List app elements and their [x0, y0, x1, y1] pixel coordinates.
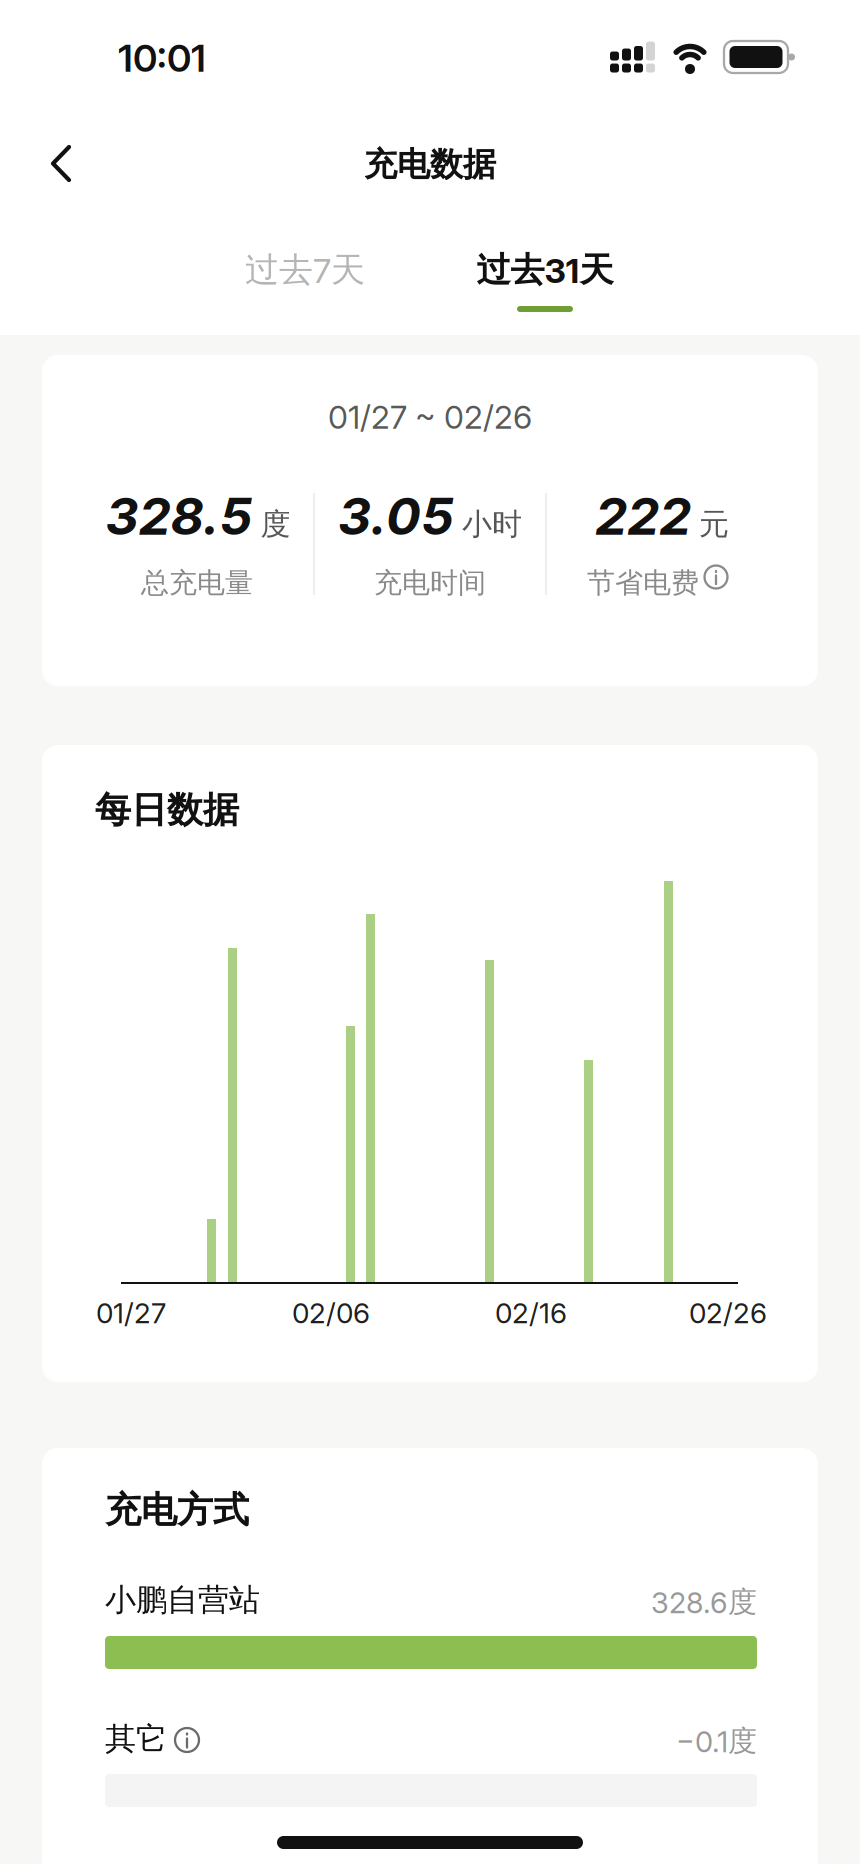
- staticText: 节省电费: [587, 565, 699, 601]
- staticText: 充电数据: [364, 144, 496, 185]
- staticText: 02/16: [495, 1296, 567, 1330]
- staticText: 每日数据: [95, 787, 239, 833]
- staticText: 其它: [105, 1719, 167, 1759]
- staticText: 过去31天: [476, 249, 613, 291]
- staticText: 总充电量: [141, 565, 253, 601]
- staticText: 3.05: [338, 485, 454, 547]
- staticText: 328.6度: [651, 1584, 757, 1620]
- staticText: 元: [699, 505, 729, 543]
- staticText: 充电时间: [374, 565, 486, 601]
- staticText: 222: [595, 485, 691, 547]
- button[interactable]: 过去31天: [435, 230, 655, 310]
- staticText: 02/26: [689, 1296, 767, 1330]
- staticText: 小时: [462, 505, 522, 543]
- staticText: 01/27: [96, 1296, 166, 1330]
- staticText: 10:01: [118, 35, 206, 81]
- button[interactable]: About saved cost: [695, 556, 736, 597]
- staticText: 过去7天: [245, 249, 365, 291]
- staticText: 充电方式: [105, 1487, 249, 1533]
- button[interactable]: Back: [31, 125, 91, 202]
- staticText: 小鹏自营站: [105, 1580, 260, 1620]
- staticText: 01/27 ~ 02/26: [328, 398, 532, 436]
- staticText: 度: [260, 505, 290, 543]
- staticText: −0.1度: [676, 1723, 757, 1759]
- button[interactable]: About other usage: [166, 1719, 208, 1761]
- staticText: 02/06: [292, 1296, 370, 1330]
- button[interactable]: 过去7天: [205, 230, 405, 310]
- staticText: 328.5: [105, 485, 252, 547]
